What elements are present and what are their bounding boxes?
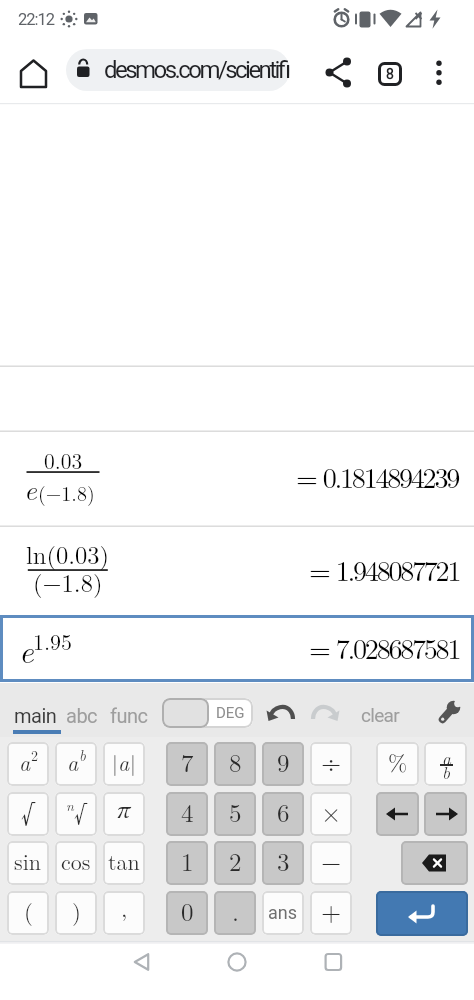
staticText: abc — [66, 704, 98, 727]
staticText: + — [321, 892, 342, 929]
staticText: clear — [361, 704, 399, 726]
staticText: 0.03 — [44, 445, 83, 465]
button[interactable]: 0 — [166, 891, 208, 935]
staticText: ln(0.03) — [26, 536, 110, 566]
button[interactable] — [425, 55, 455, 89]
button[interactable]: cos — [55, 841, 97, 885]
staticText: ÷ — [321, 743, 342, 780]
button[interactable] — [376, 891, 468, 936]
button[interactable]: √ — [7, 792, 49, 836]
staticText: 8 — [229, 744, 242, 779]
button[interactable] — [435, 698, 463, 728]
staticText: ( — [24, 894, 33, 927]
staticText: b — [79, 744, 86, 765]
button[interactable]: main — [11, 702, 59, 728]
button[interactable]: π — [103, 792, 145, 836]
staticText: 2 — [229, 843, 242, 878]
button[interactable] — [0, 366, 474, 431]
button[interactable]: a — [7, 742, 49, 786]
button[interactable]: 1 — [166, 841, 208, 885]
staticText: 7 — [181, 744, 194, 779]
staticText: 1 — [181, 843, 194, 878]
button[interactable]: 4 — [166, 792, 208, 836]
button[interactable]: , — [103, 891, 145, 935]
staticText: (−1.8) — [38, 478, 95, 504]
button[interactable] — [217, 945, 257, 981]
staticText: 0 — [181, 893, 194, 928]
button[interactable]: 8 — [378, 62, 402, 86]
button[interactable]: × — [310, 792, 352, 836]
button[interactable]: sin — [7, 841, 49, 885]
staticText: cos — [61, 845, 91, 876]
staticText: | — [130, 747, 136, 777]
button[interactable]: 9 — [262, 742, 304, 786]
staticText: sin — [14, 845, 42, 876]
button[interactable] — [0, 526, 474, 615]
staticText: = 0.1814894239 — [296, 456, 458, 496]
staticText: 8 — [386, 66, 394, 82]
staticText: × — [321, 793, 342, 830]
button[interactable]: ( — [7, 891, 49, 935]
button[interactable]: ans — [262, 891, 304, 935]
button[interactable]: a — [55, 742, 97, 786]
staticText: n — [66, 795, 74, 815]
button[interactable]: . — [214, 891, 256, 935]
button[interactable] — [313, 945, 353, 981]
staticText: − — [321, 842, 342, 879]
button[interactable] — [162, 698, 253, 728]
staticText: π — [117, 800, 131, 823]
button[interactable]: 8 — [214, 742, 256, 786]
button[interactable]: tan — [103, 841, 145, 885]
button[interactable]: | — [103, 742, 145, 786]
button[interactable] — [401, 841, 468, 885]
staticText: = 1.948087721 — [309, 549, 460, 589]
staticText: 3 — [277, 843, 290, 878]
button[interactable]: func — [108, 702, 149, 728]
button[interactable] — [306, 698, 340, 728]
staticText: , — [121, 891, 128, 924]
button[interactable]: n — [55, 792, 97, 836]
staticText: desmos.com/scientifi — [104, 56, 289, 84]
staticText: ) — [72, 894, 81, 927]
staticText: b — [442, 759, 451, 784]
button[interactable]: − — [310, 841, 352, 885]
staticText: e — [19, 627, 34, 667]
button[interactable]: + — [310, 891, 352, 935]
button[interactable]: ) — [55, 891, 97, 935]
staticText: tan — [108, 845, 140, 876]
staticText: a — [118, 746, 130, 777]
staticText: √ — [74, 793, 87, 830]
button[interactable]: 5 — [214, 792, 256, 836]
staticText: func — [110, 704, 148, 727]
button[interactable] — [320, 55, 354, 89]
staticText: a — [67, 746, 79, 777]
button[interactable]: ÷ — [310, 742, 352, 786]
button[interactable]: clear — [355, 701, 405, 728]
button[interactable] — [0, 615, 474, 682]
staticText: a — [442, 745, 451, 770]
staticText: 1.95 — [33, 625, 73, 649]
button[interactable] — [66, 49, 290, 91]
button[interactable] — [262, 698, 296, 728]
button[interactable] — [120, 945, 160, 981]
button[interactable] — [376, 792, 419, 836]
staticText: = 7.028687581 — [309, 627, 460, 667]
staticText: a — [19, 746, 31, 777]
button[interactable]: a — [424, 742, 467, 786]
staticText: e — [24, 468, 37, 504]
staticText: . — [232, 893, 239, 928]
staticText: % — [388, 745, 408, 778]
button[interactable]: 2 — [214, 841, 256, 885]
button[interactable]: 6 — [262, 792, 304, 836]
button[interactable] — [0, 431, 474, 526]
staticText: 6 — [277, 794, 290, 829]
button[interactable]: abc — [66, 702, 98, 728]
button[interactable] — [424, 792, 467, 836]
staticText: main — [14, 704, 57, 727]
button[interactable]: 3 — [262, 841, 304, 885]
staticText: 9 — [277, 744, 290, 779]
button[interactable]: 7 — [166, 742, 208, 786]
button[interactable] — [15, 55, 53, 92]
button[interactable]: % — [376, 742, 419, 786]
staticText: DEG — [216, 704, 245, 722]
